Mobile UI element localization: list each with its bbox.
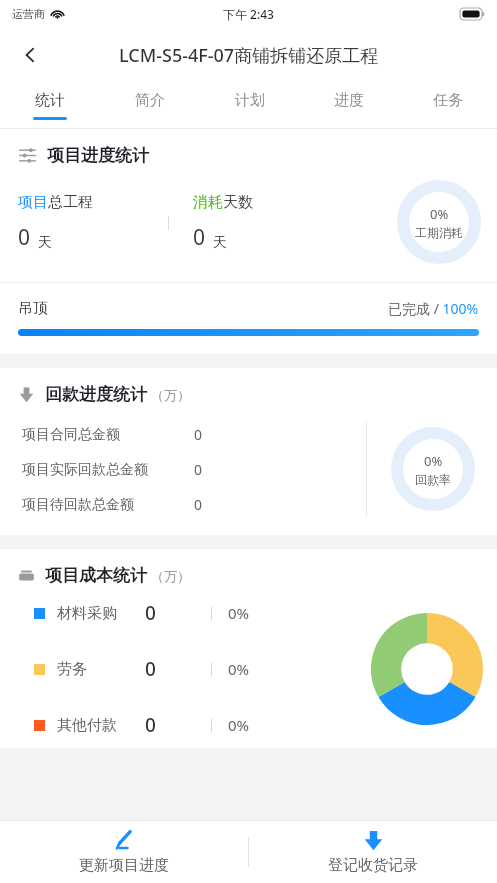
staticText: 登记收货记录 [328, 856, 418, 875]
staticText: 已完成 / 100% [388, 299, 479, 318]
staticText: 0 [145, 600, 156, 626]
staticText: 任务 [433, 91, 463, 110]
staticText: 天 [38, 234, 52, 252]
staticText: 下午 2:43 [223, 6, 274, 22]
button[interactable]: 统计 [0, 82, 100, 129]
staticText: 项目总工程 [18, 193, 93, 212]
staticText: 运营商 [12, 7, 45, 21]
staticText: 简介 [135, 91, 165, 110]
staticText: 天 [213, 234, 227, 252]
staticText: 工期消耗 [415, 225, 463, 240]
staticText: 材料采购 [57, 604, 117, 623]
staticText: 回款进度统计 [45, 384, 147, 405]
staticText: 0 [194, 425, 203, 444]
staticText: 项目进度统计 [47, 145, 149, 166]
staticText: 统计 [35, 91, 65, 110]
staticText: 回款率 [415, 472, 451, 487]
staticText: 项目合同总金额 [22, 426, 120, 444]
staticText: LCM-S5-4F-07商铺拆铺还原工程 [119, 43, 379, 68]
staticText: 0% [424, 452, 443, 470]
button[interactable]: 进度 [299, 82, 398, 129]
staticText: （万） [151, 568, 190, 584]
staticText: 0% [228, 659, 250, 679]
button[interactable]: 任务 [398, 82, 497, 129]
staticText: （万） [151, 387, 190, 403]
staticText: 0 [194, 460, 203, 479]
staticText: 其他付款 [57, 716, 117, 735]
staticText: 劳务 [57, 660, 87, 679]
staticText: 进度 [334, 91, 364, 110]
staticText: 0% [228, 715, 250, 735]
staticText: 0 [193, 223, 206, 252]
staticText: 项目实际回款总金额 [22, 461, 148, 479]
staticText: 0 [145, 656, 156, 682]
staticText: 项目待回款总金额 [22, 496, 134, 514]
button[interactable]: Back [8, 33, 52, 77]
staticText: 更新项目进度 [79, 856, 169, 875]
button[interactable]: 更新项目进度 [0, 821, 248, 883]
staticText: 吊顶 [18, 299, 48, 318]
staticText: 项目成本统计 [45, 565, 147, 586]
staticText: 消耗天数 [193, 193, 253, 212]
staticText: 0% [228, 603, 250, 623]
staticText: 0% [430, 205, 449, 223]
staticText: 计划 [235, 91, 265, 110]
button[interactable]: 简介 [100, 82, 200, 129]
staticText: 0 [145, 712, 156, 738]
button[interactable]: 计划 [200, 82, 299, 129]
staticText: 0 [194, 495, 203, 514]
staticText: 0 [18, 223, 31, 252]
button[interactable]: 登记收货记录 [249, 821, 497, 883]
